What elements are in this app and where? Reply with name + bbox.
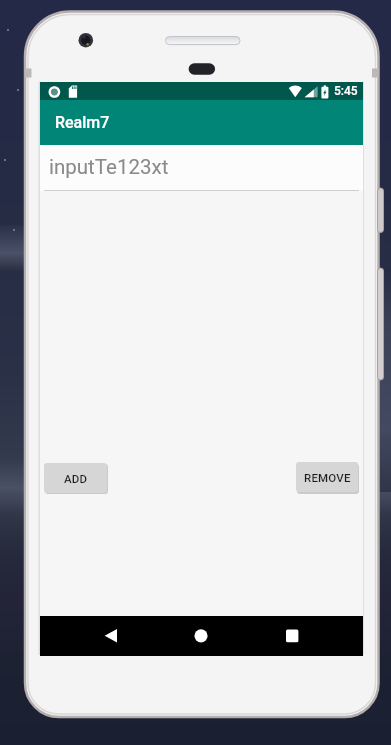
button[interactable] bbox=[268, 616, 316, 656]
staticText: Realm7 bbox=[55, 113, 110, 132]
staticText: inputTe123xt bbox=[49, 155, 169, 179]
button[interactable] bbox=[87, 616, 135, 656]
button[interactable]: inputTe123xt bbox=[40, 145, 363, 191]
staticText: 5:45 bbox=[334, 84, 358, 98]
staticText: REMOVE bbox=[304, 471, 351, 484]
button[interactable] bbox=[177, 616, 225, 656]
staticText: ADD bbox=[64, 472, 88, 485]
button[interactable]: ADD bbox=[44, 463, 107, 493]
button[interactable]: REMOVE bbox=[296, 462, 358, 492]
